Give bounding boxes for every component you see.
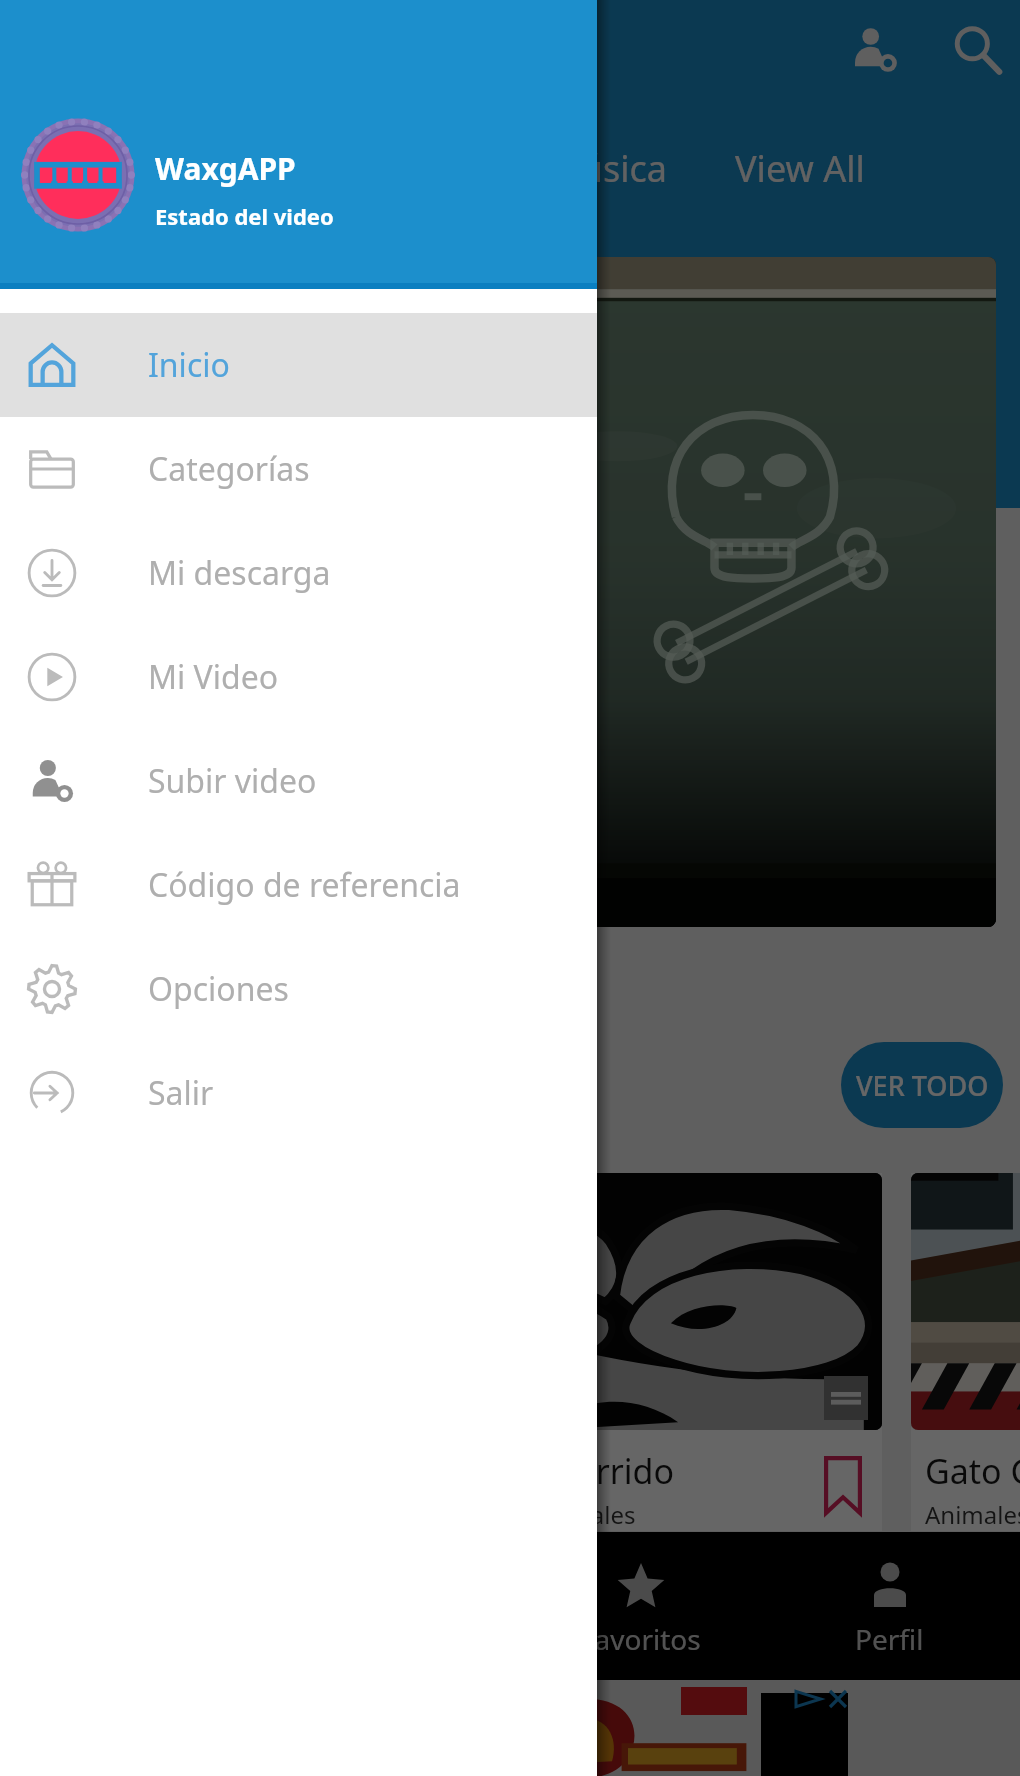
staticText: Estado del video (155, 201, 334, 231)
button[interactable]: Perfil (771, 1532, 1008, 1680)
staticText: Perfil (855, 1620, 924, 1658)
button[interactable]: Buscar (928, 1, 1020, 99)
staticText: Subir video (148, 759, 317, 803)
staticText: Código de referencia (148, 863, 461, 907)
staticText: Inicio (148, 343, 230, 387)
staticText: Salir (148, 1071, 214, 1115)
staticText: Opciones (148, 967, 289, 1011)
button[interactable]: Mi cuenta (826, 1, 924, 99)
staticText: Música (548, 144, 667, 193)
staticText: Gato Gracioso (925, 1448, 1020, 1494)
button[interactable]: Código de referencia (0, 833, 597, 937)
button[interactable]: Salir (0, 1041, 597, 1145)
staticText: Animales (925, 1498, 1020, 1531)
button[interactable]: VER TODO (841, 1042, 1003, 1128)
staticText: Aburrido (532, 1448, 674, 1494)
button[interactable]: Guardar (824, 1456, 862, 1515)
button[interactable]: Mi descarga (0, 521, 597, 625)
button[interactable]: Inicio (0, 313, 597, 417)
button[interactable]: Favoritos (510, 1532, 771, 1680)
button[interactable]: Música (548, 144, 667, 193)
staticText: Favoritos (580, 1620, 701, 1658)
staticText: Categorías (148, 447, 310, 491)
button[interactable]: Subir video (0, 729, 597, 833)
staticText: WaxgAPP (155, 148, 296, 189)
button[interactable]: Gato Gracioso (911, 1173, 1020, 1531)
staticText: Mi descarga (148, 551, 331, 595)
staticText: Animales (532, 1498, 636, 1531)
button[interactable]: Categorías (0, 417, 597, 521)
button[interactable]: Mi Video (0, 625, 597, 729)
staticText: View All (735, 144, 865, 193)
button[interactable]: Aburrido (518, 1173, 882, 1531)
staticText: VER TODO (856, 1067, 989, 1104)
button[interactable]: Opciones (0, 937, 597, 1041)
button[interactable]: View All (735, 144, 865, 193)
staticText: Mi Video (148, 655, 279, 699)
